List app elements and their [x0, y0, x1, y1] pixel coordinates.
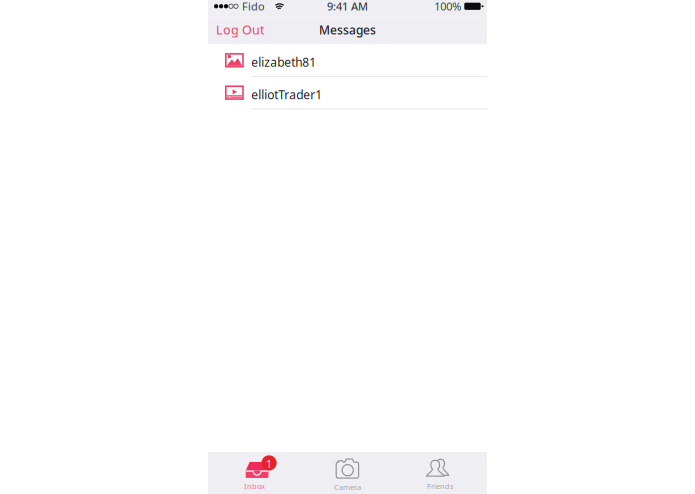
staticText: Log Out: [216, 21, 265, 38]
button[interactable]: 1: [208, 452, 301, 494]
button[interactable]: Log Out: [208, 16, 273, 43]
staticText: Fido: [242, 0, 265, 14]
button[interactable]: Camera: [301, 452, 394, 494]
staticText: 100%: [434, 0, 461, 14]
staticText: elliotTrader1: [251, 86, 322, 103]
staticText: 1: [266, 457, 272, 471]
staticText: Friends: [427, 481, 454, 491]
staticText: Messages: [319, 22, 376, 38]
button[interactable]: Friends: [394, 452, 487, 494]
staticText: Camera: [334, 482, 361, 492]
button[interactable]: elizabeth81: [208, 44, 487, 77]
button[interactable]: elliotTrader1: [208, 77, 487, 109]
staticText: 9:41 AM: [327, 0, 368, 14]
staticText: elizabeth81: [251, 54, 316, 70]
staticText: Inbox: [244, 481, 265, 491]
